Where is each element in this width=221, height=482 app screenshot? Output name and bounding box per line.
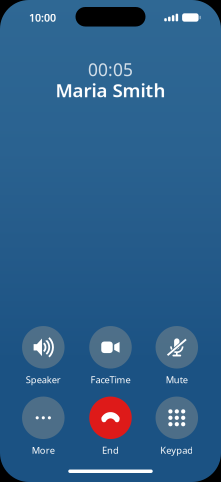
- staticText: Mute: [166, 373, 188, 386]
- staticText: Keypad: [160, 444, 193, 456]
- staticText: Speaker: [26, 373, 61, 386]
- button[interactable]: Keypad: [144, 397, 210, 455]
- button[interactable]: More: [10, 397, 76, 455]
- staticText: 10:00: [29, 10, 56, 25]
- staticText: 00:05: [88, 58, 133, 81]
- staticText: More: [32, 444, 55, 456]
- button[interactable]: End: [77, 397, 143, 455]
- button[interactable]: Mute: [144, 326, 210, 384]
- button[interactable]: Speaker: [10, 326, 76, 384]
- staticText: End: [102, 444, 119, 456]
- staticText: FaceTime: [90, 373, 130, 386]
- button[interactable]: FaceTime: [77, 326, 143, 384]
- staticText: Maria Smith: [55, 78, 165, 102]
